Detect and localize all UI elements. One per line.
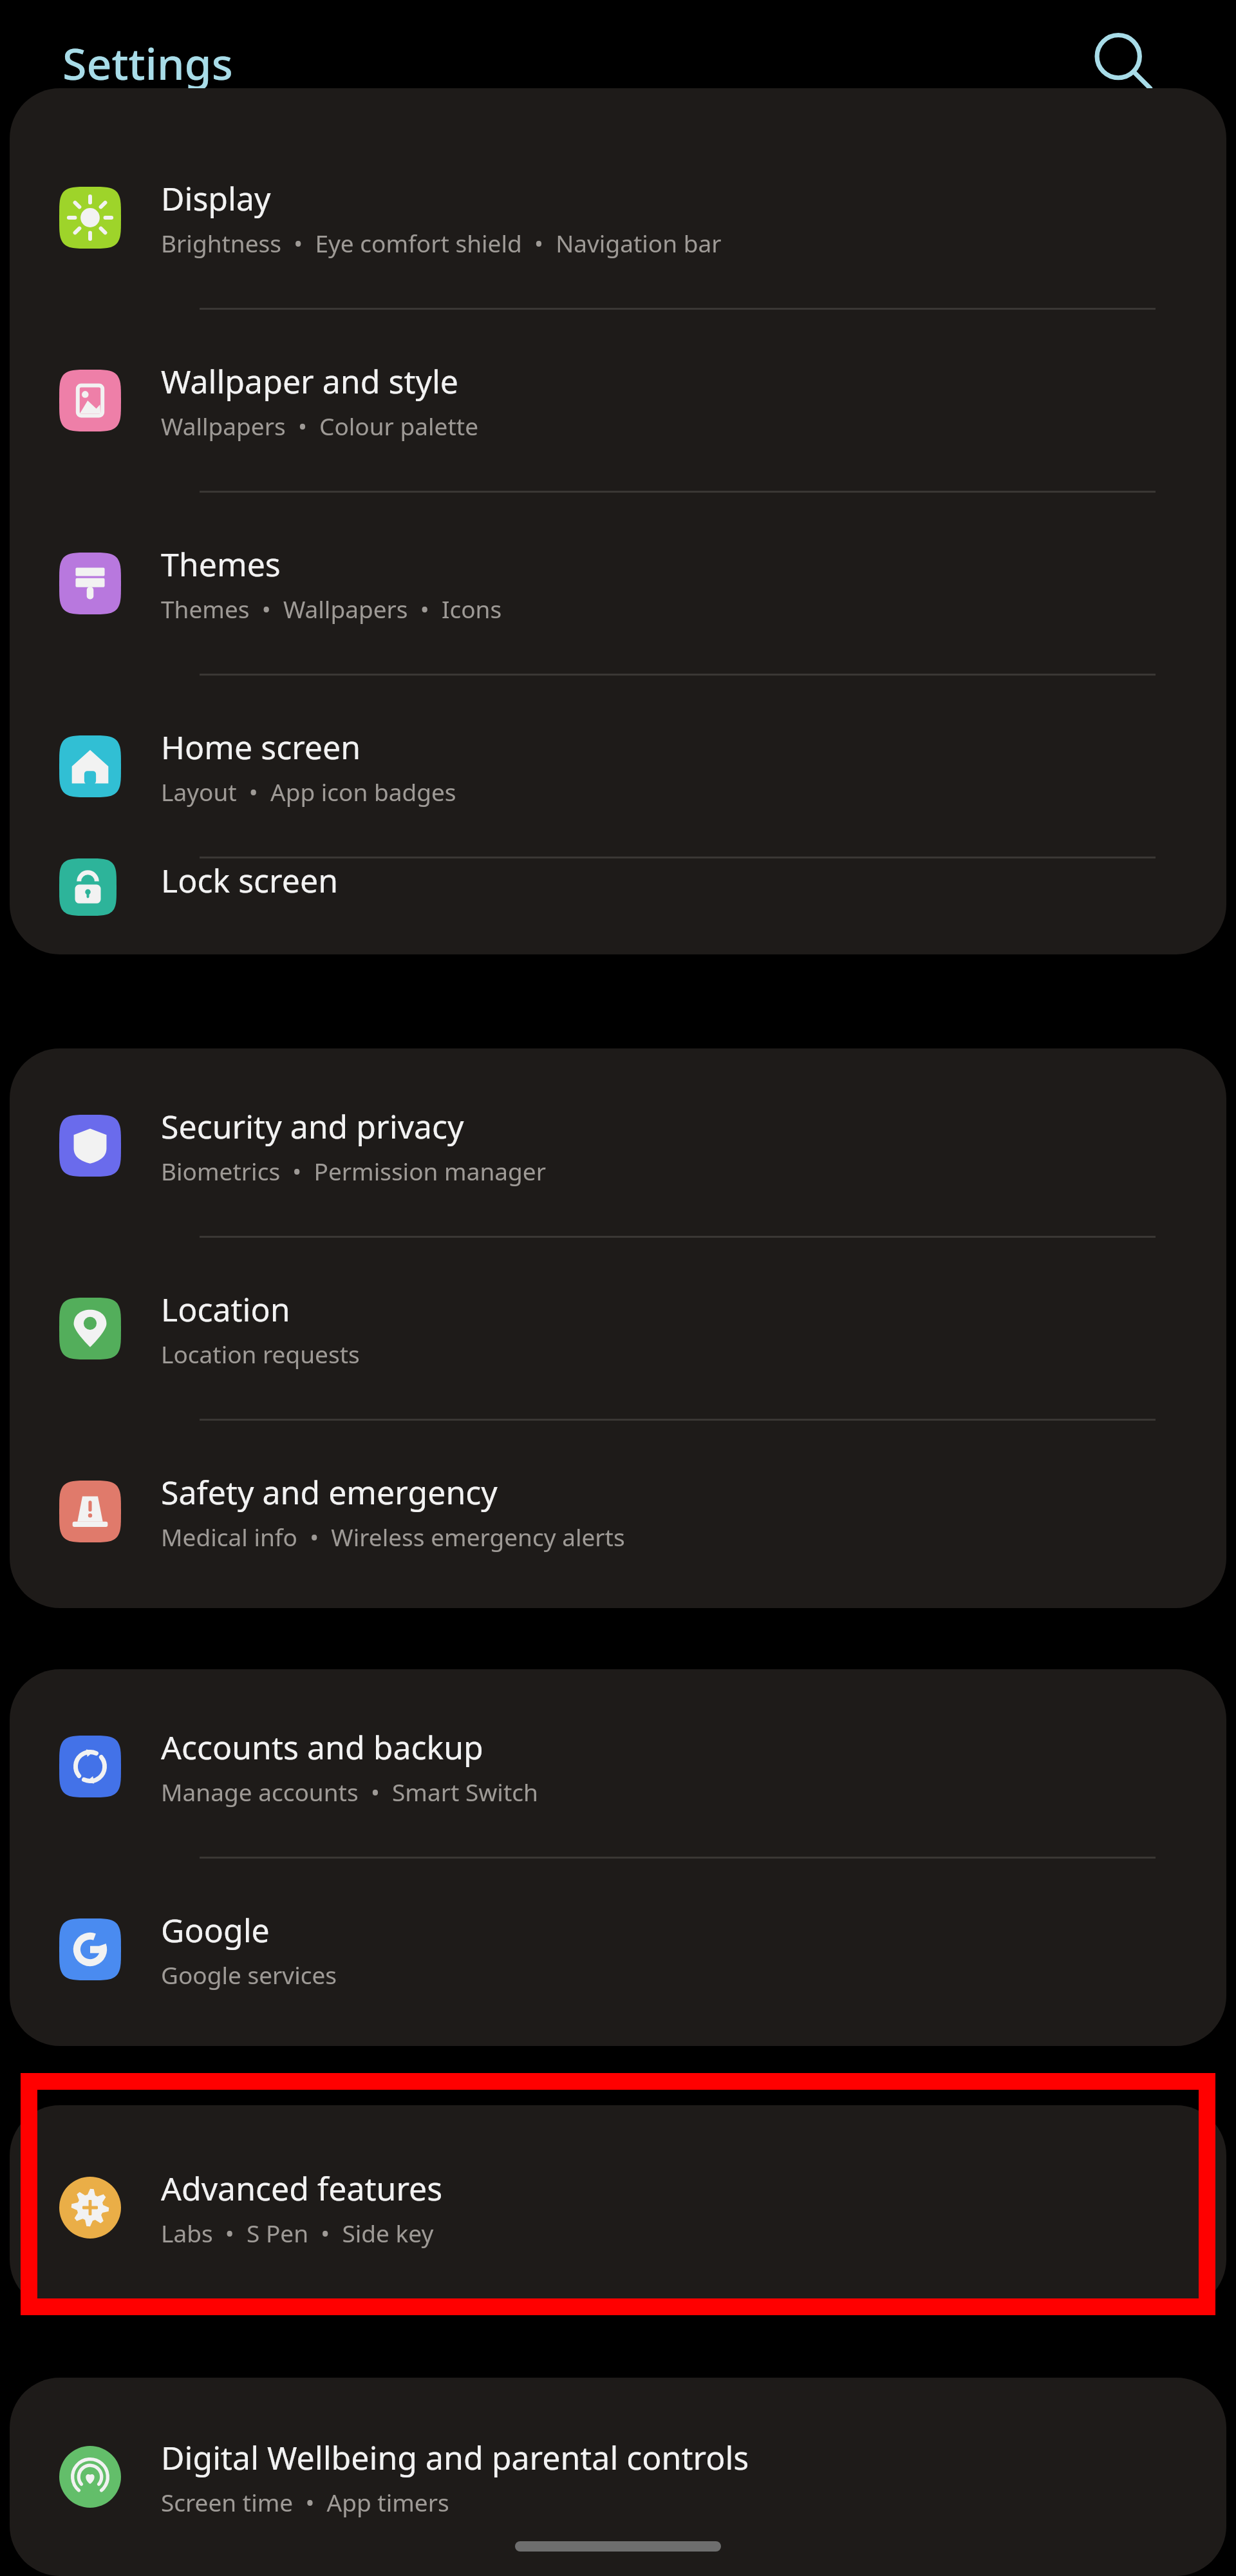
staticText: Brightness • Eye comfort shield • Naviga… (161, 227, 722, 259)
staticText: Lock screen (161, 858, 339, 902)
button[interactable]: Wallpaper and style (10, 310, 1226, 493)
staticText: Layout • App icon badges (161, 775, 456, 808)
staticText: Wallpaper and style (161, 359, 459, 403)
staticText: Display (161, 176, 271, 220)
button[interactable]: Themes (10, 493, 1226, 676)
button[interactable]: Lock screen (10, 858, 1226, 916)
staticText: Google services (161, 1958, 337, 1991)
staticText: Themes (161, 542, 281, 586)
button[interactable]: Search (1081, 21, 1165, 105)
staticText: Location (161, 1287, 290, 1331)
staticText: Google (161, 1908, 270, 1952)
staticText: Safety and emergency (161, 1470, 498, 1514)
staticText: Medical info • Wireless emergency alerts (161, 1520, 625, 1553)
staticText: Advanced features (161, 2166, 443, 2210)
button[interactable]: Security and privacy (10, 1055, 1226, 1238)
staticText: Screen time • App timers (161, 2486, 449, 2518)
button[interactable]: Digital Wellbeing and parental controls (10, 2389, 1226, 2564)
staticText: Themes • Wallpapers • Icons (161, 592, 502, 625)
button[interactable]: Display (10, 127, 1226, 310)
staticText: Accounts and backup (161, 1725, 483, 1769)
button[interactable]: Home screen (10, 676, 1226, 858)
staticText: Security and privacy (161, 1104, 464, 1148)
button[interactable]: Google (10, 1859, 1226, 2040)
staticText: Wallpapers • Colour palette (161, 410, 479, 442)
staticText: Biometrics • Permission manager (161, 1155, 546, 1187)
staticText: Manage accounts • Smart Switch (161, 1776, 538, 1808)
staticText: Settings (62, 33, 233, 93)
button[interactable]: Safety and emergency (10, 1421, 1226, 1602)
staticText: Home screen (161, 725, 361, 769)
button[interactable]: Location (10, 1238, 1226, 1421)
button[interactable]: Accounts and backup (10, 1676, 1226, 1859)
staticText: Digital Wellbeing and parental controls (161, 2436, 749, 2479)
staticText: Location requests (161, 1338, 360, 1370)
staticText: Labs • S Pen • Side key (161, 2217, 434, 2249)
button[interactable]: Advanced features (10, 2117, 1226, 2298)
